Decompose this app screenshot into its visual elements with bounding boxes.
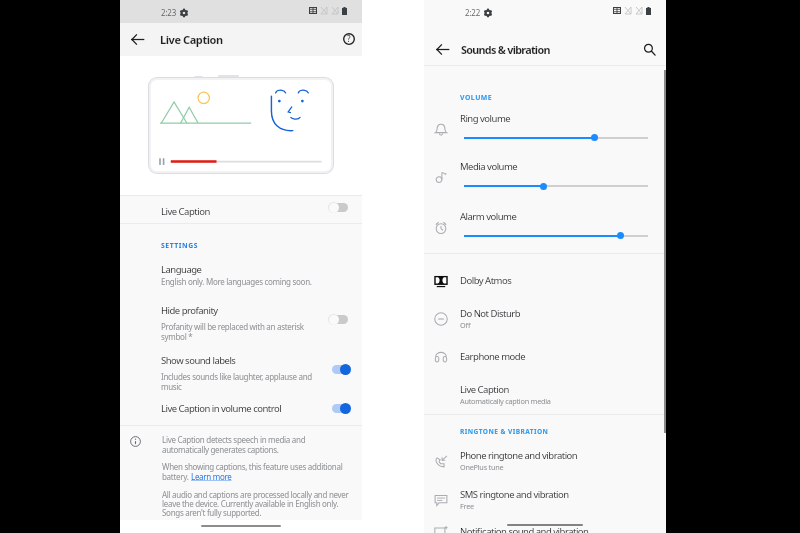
staticText: Phone ringtone and vibration xyxy=(460,449,578,462)
button[interactable]: Back xyxy=(125,27,150,52)
staticText: Language xyxy=(161,263,202,276)
staticText: leave the device. Currently available in… xyxy=(162,498,339,509)
button[interactable]: Dolby Atmos xyxy=(424,266,666,296)
button[interactable]: Search xyxy=(637,37,661,61)
button[interactable]: Do Not Disturb xyxy=(424,299,666,333)
staticText: When showing captions, this feature uses… xyxy=(162,461,343,472)
staticText: Songs aren't fully supported. xyxy=(162,507,262,518)
staticText: Live Caption detects speech in media and xyxy=(162,434,306,445)
staticText: Automatically caption media xyxy=(460,396,551,406)
staticText: battery. xyxy=(162,471,191,482)
staticText: Live Caption xyxy=(160,32,223,47)
staticText: Media volume xyxy=(460,160,518,173)
staticText: Notification sound and vibration xyxy=(460,525,589,533)
button[interactable]: SMS ringtone and vibration xyxy=(424,480,666,514)
staticText: 2:22 xyxy=(465,7,481,18)
staticText: VOLUME xyxy=(460,93,493,102)
staticText: Show sound labels xyxy=(161,354,236,367)
staticText: Live Caption xyxy=(460,383,509,396)
staticText: SETTINGS xyxy=(161,241,199,250)
button[interactable]: Phone ringtone and vibration xyxy=(424,441,666,475)
staticText: Ring volume xyxy=(460,112,511,125)
staticText: All audio and captions are processed loc… xyxy=(162,489,349,500)
button[interactable]: Live Caption in volume control xyxy=(120,398,362,422)
staticText: Dolby Atmos xyxy=(460,274,512,287)
staticText: Earphone mode xyxy=(460,350,526,363)
button[interactable]: Show sound labels xyxy=(120,350,362,392)
button[interactable]: Hide profanity xyxy=(120,300,362,342)
staticText: Off xyxy=(460,320,471,330)
staticText: automatically generates captions. xyxy=(162,444,279,455)
button[interactable]: Alarm volume xyxy=(424,205,666,246)
staticText: Includes sounds like laughter, applause … xyxy=(161,371,312,392)
staticText: RINGTONE & VIBRATION xyxy=(460,427,549,436)
button[interactable]: Earphone mode xyxy=(424,342,666,372)
staticText: 2:23 xyxy=(161,7,177,18)
staticText: ? xyxy=(347,33,351,44)
staticText: Sounds & vibration xyxy=(461,42,550,57)
button[interactable]: Learn more xyxy=(191,471,232,482)
staticText: Live Caption in volume control xyxy=(161,402,282,415)
staticText: Free xyxy=(460,501,474,511)
button[interactable]: Back xyxy=(430,37,454,61)
staticText: Hide profanity xyxy=(161,304,218,317)
staticText: English only. More languages coming soon… xyxy=(161,276,312,287)
staticText: SMS ringtone and vibration xyxy=(460,488,569,501)
staticText: Do Not Disturb xyxy=(460,307,521,320)
button[interactable]: Notification sound and vibration xyxy=(424,517,666,533)
staticText: Live Caption xyxy=(161,205,210,218)
button[interactable]: Ring volume xyxy=(424,107,666,148)
button[interactable]: Live Caption xyxy=(120,196,362,223)
staticText: Profanity will be replaced with an aster… xyxy=(161,321,304,342)
button[interactable]: Language xyxy=(120,258,362,290)
button[interactable]: Live Caption xyxy=(424,375,666,409)
button[interactable]: Help xyxy=(336,26,361,51)
button[interactable]: Media volume xyxy=(424,155,666,196)
staticText: Alarm volume xyxy=(460,210,517,223)
staticText: OnePlus tune xyxy=(460,462,504,472)
